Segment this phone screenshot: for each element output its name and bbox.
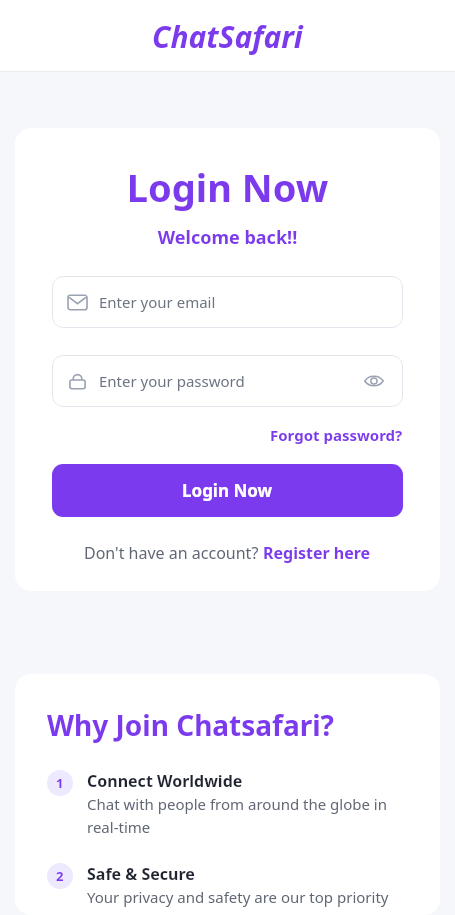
button[interactable]: Forgot password? bbox=[270, 425, 403, 445]
staticText: Register here bbox=[263, 542, 371, 564]
button[interactable]: Enter your password bbox=[52, 355, 403, 407]
staticText: Enter your email bbox=[99, 292, 387, 312]
staticText: Don't have an account? bbox=[84, 542, 263, 564]
staticText: Your privacy and safety are our top prio… bbox=[87, 887, 389, 907]
staticText: Chat with people from around the globe i… bbox=[87, 794, 408, 837]
staticText: 1 bbox=[56, 774, 64, 792]
staticText: Safe & Secure bbox=[87, 863, 195, 885]
button[interactable]: Show password bbox=[361, 368, 387, 394]
button[interactable]: Enter your email bbox=[52, 276, 403, 328]
staticText: Forgot password? bbox=[270, 425, 403, 445]
button[interactable]: Register here bbox=[263, 542, 371, 564]
staticText: Enter your password bbox=[99, 371, 361, 391]
staticText: Login Now bbox=[52, 161, 403, 213]
staticText: Connect Worldwide bbox=[87, 770, 243, 792]
staticText: ChatSafari bbox=[152, 16, 303, 57]
staticText: Login Now bbox=[182, 479, 273, 502]
button[interactable]: Login Now bbox=[52, 464, 403, 517]
staticText: Why Join Chatsafari? bbox=[47, 706, 334, 744]
staticText: 2 bbox=[56, 867, 64, 885]
staticText: Welcome back!! bbox=[52, 225, 403, 250]
